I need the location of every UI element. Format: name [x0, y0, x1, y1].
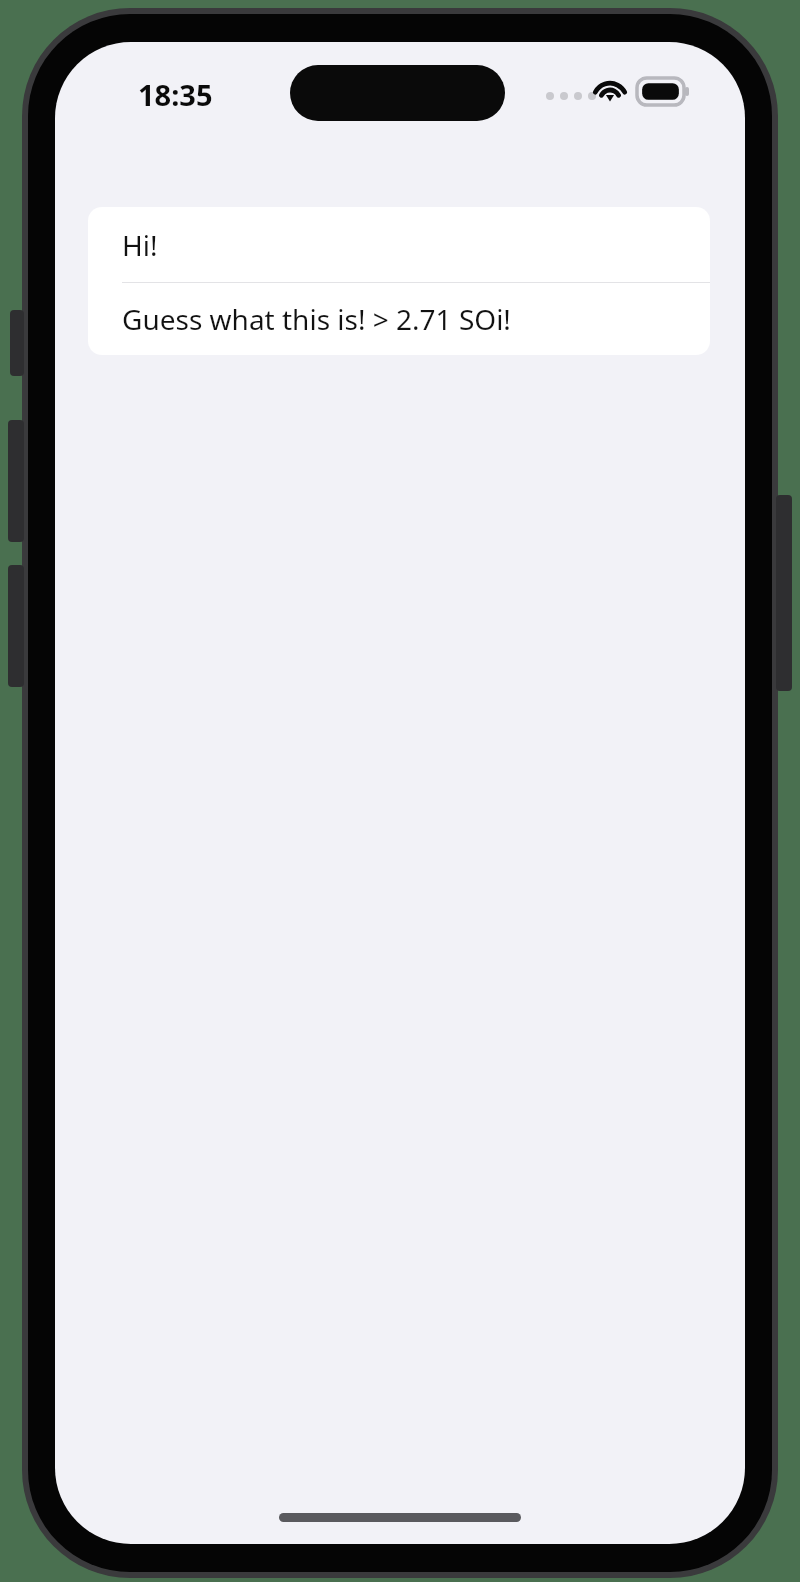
button[interactable]: Hi! — [88, 207, 710, 282]
button[interactable]: Guess what this is! > 2.71 SOi! — [88, 283, 710, 355]
staticText: 18:35 — [138, 75, 213, 114]
staticText: Guess what this is! > 2.71 SOi! — [122, 300, 511, 338]
staticText: Hi! — [122, 226, 158, 264]
